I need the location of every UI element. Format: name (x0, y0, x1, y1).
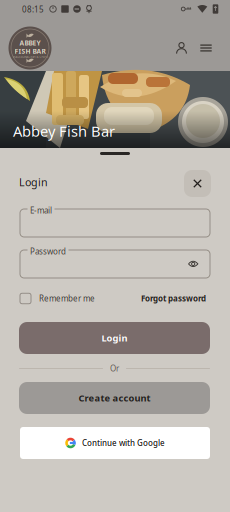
staticText: ABBEY (19, 38, 40, 47)
staticText: Login (19, 175, 48, 189)
button[interactable]: Continue with Google (20, 427, 210, 459)
button[interactable]: Login (19, 322, 210, 354)
button[interactable]: Remember me (20, 293, 95, 304)
staticText: Remember me (39, 293, 95, 304)
staticText: TRADITIONAL FISH & CHIPS (12, 55, 47, 59)
button[interactable]: Account (169, 36, 194, 60)
button[interactable]: Forgot password (141, 293, 206, 304)
button[interactable]: Menu (194, 36, 218, 60)
button[interactable]: Create account (19, 382, 210, 414)
staticText: Create account (78, 392, 150, 404)
staticText: FISH BAR (14, 47, 45, 56)
button[interactable]: Close (184, 170, 211, 197)
staticText: E-mail (30, 205, 52, 216)
staticText: Abbey Fish Bar (13, 121, 115, 141)
staticText: 08:15 (22, 4, 44, 15)
staticText: Password (30, 246, 66, 257)
staticText: Continue with Google (82, 438, 165, 448)
staticText: Forgot password (141, 293, 206, 304)
staticText: Or (110, 363, 119, 374)
staticText: Login (101, 332, 127, 344)
